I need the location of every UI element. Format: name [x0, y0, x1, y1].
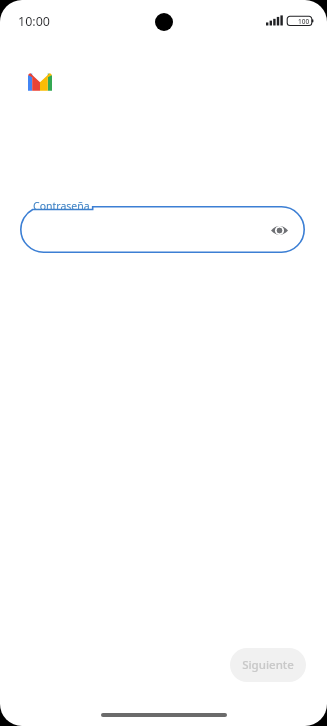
staticText: 10:00 — [18, 13, 50, 30]
staticText: Siguiente — [242, 657, 294, 673]
button[interactable]: Siguiente — [230, 648, 306, 682]
button[interactable]: Mostrar contraseña — [20, 206, 305, 253]
button[interactable]: Gmail — [22, 64, 58, 100]
staticText: Contraseña — [33, 199, 90, 213]
staticText: 100 — [298, 17, 310, 26]
button[interactable]: Mostrar contraseña — [265, 216, 293, 244]
